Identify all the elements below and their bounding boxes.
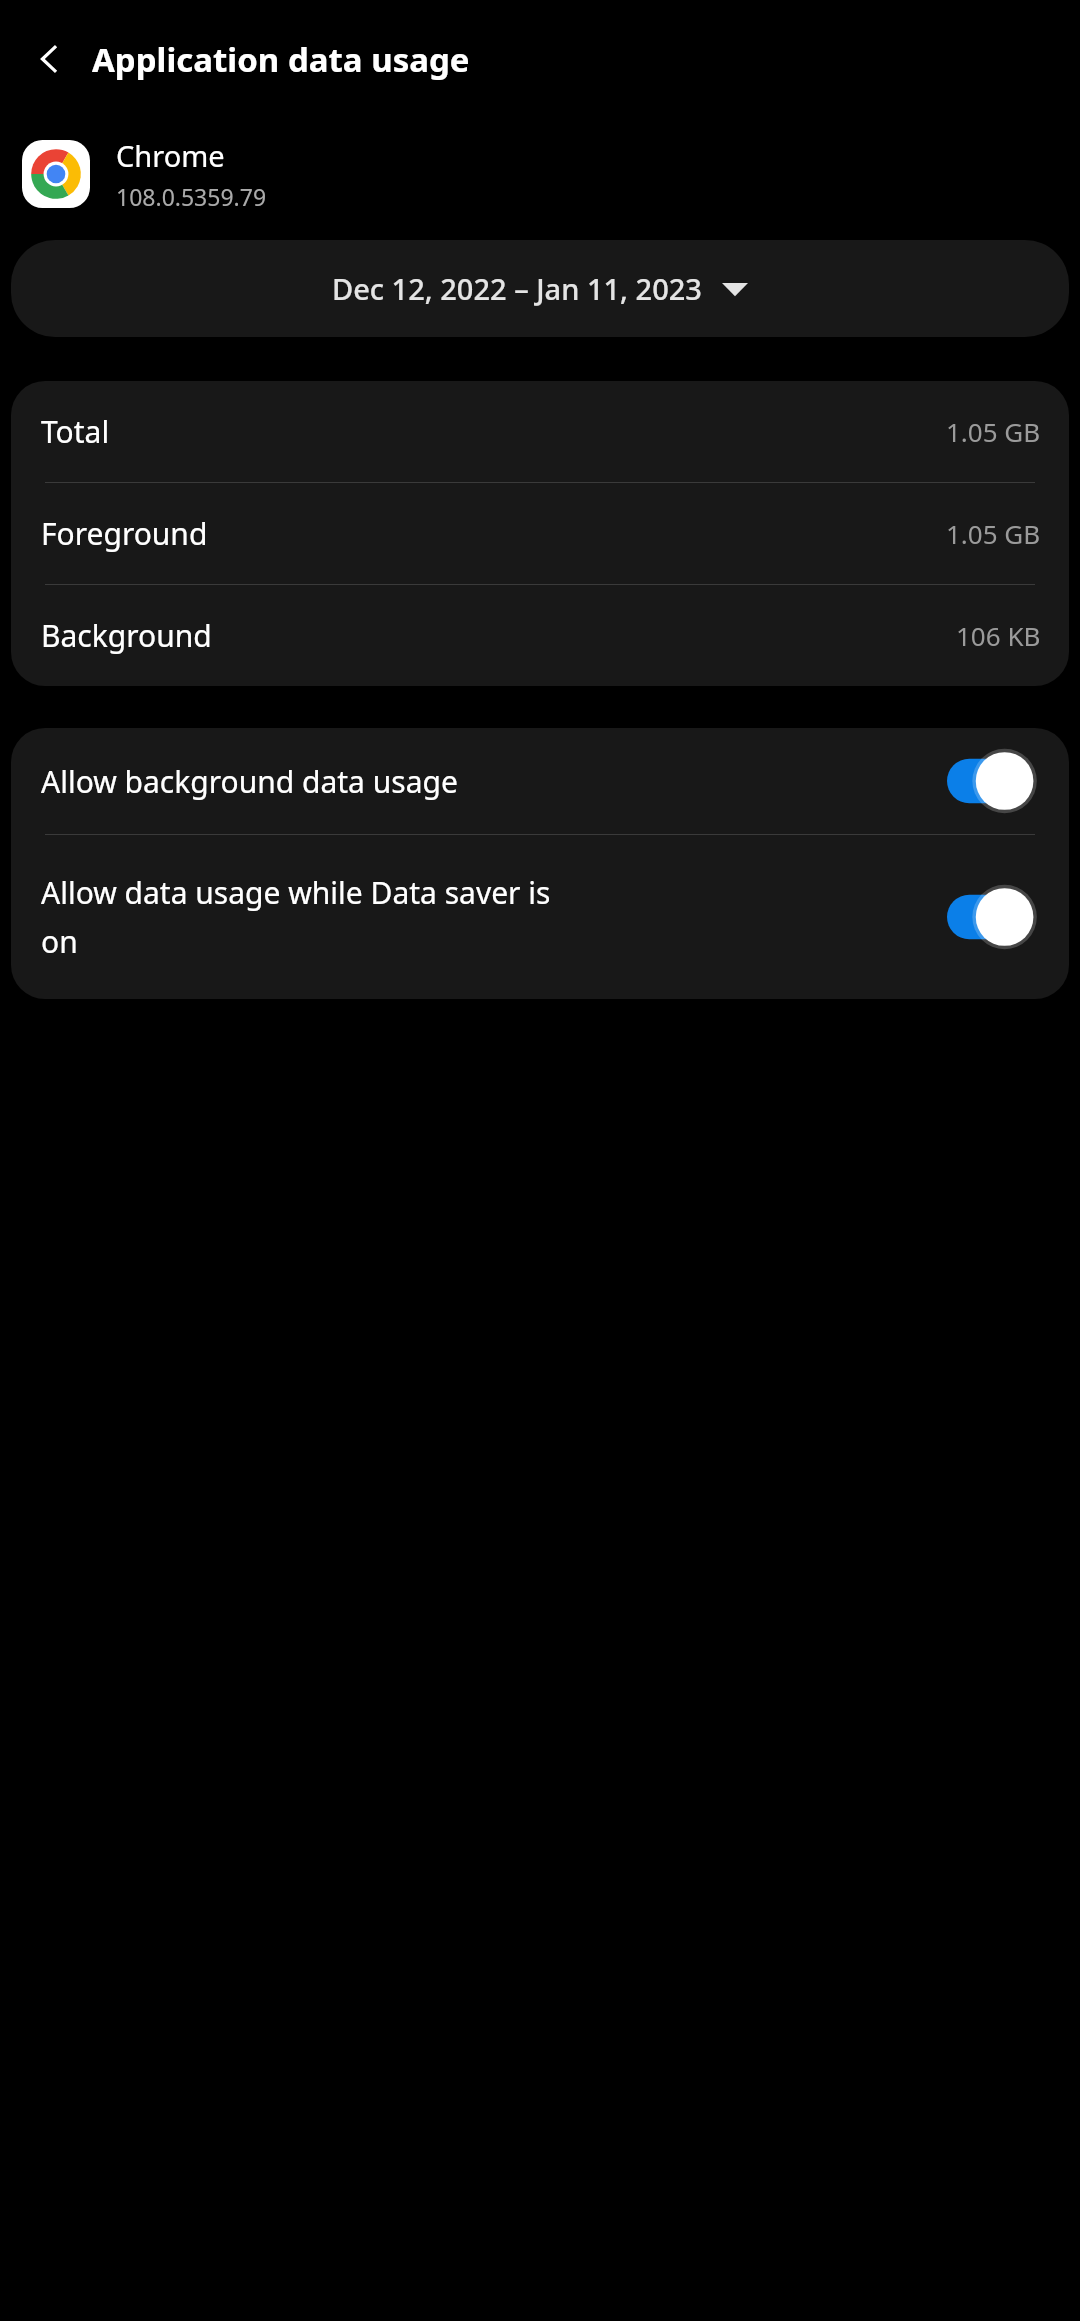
staticText: Allow data usage while Data saver is [41,872,551,913]
staticText: on [41,921,78,962]
staticText: Allow background data usage [41,761,458,802]
button[interactable]: Total [11,381,1069,482]
staticText: Dec 12, 2022 – Jan 11, 2023 [332,269,702,308]
button[interactable]: Toggle on [947,750,1043,812]
button[interactable]: Toggle on [947,886,1043,948]
staticText: Application data usage [92,37,470,82]
staticText: Foreground [41,513,208,554]
button[interactable]: Dec 12, 2022 – Jan 11, 2023 [11,240,1069,337]
button[interactable]: Back [22,31,78,87]
staticText: Background [41,615,212,656]
staticText: 108.0.5359.79 [116,181,267,212]
button[interactable]: Background [11,585,1069,686]
staticText: 1.05 GB [946,516,1041,551]
staticText: 106 KB [956,618,1041,653]
button[interactable]: Foreground [11,483,1069,584]
staticText: 1.05 GB [946,414,1041,449]
button[interactable]: Allow background data usage [11,728,1069,834]
staticText: Total [41,411,110,452]
button[interactable]: Allow data usage while Data saver is [11,835,1069,999]
staticText: Chrome [116,136,225,175]
